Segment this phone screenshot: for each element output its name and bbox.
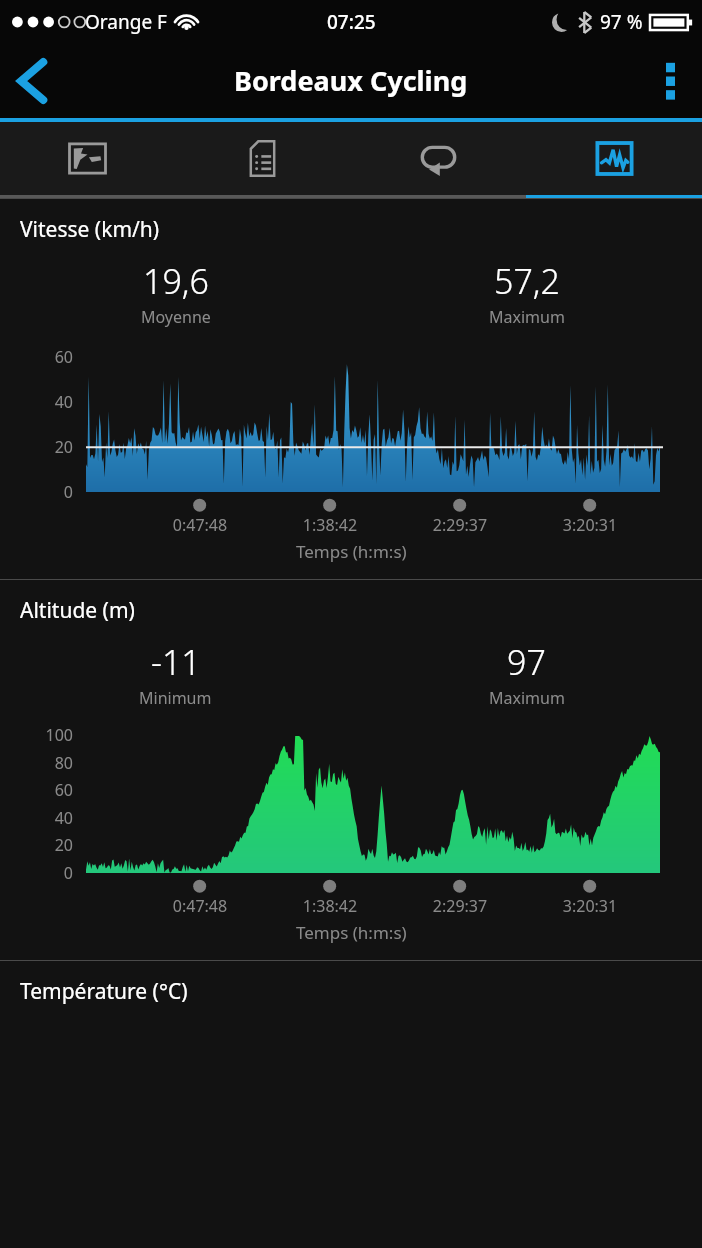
button[interactable]: More options bbox=[638, 49, 702, 113]
staticText: Vitesse (km/h) bbox=[20, 215, 160, 244]
staticText: 20 bbox=[0, 436, 73, 458]
staticText: 2:29:37 bbox=[109, 895, 702, 917]
staticText: Maximum bbox=[489, 306, 565, 328]
staticText: Altitude (m) bbox=[20, 596, 135, 625]
staticText: 2:29:37 bbox=[109, 514, 702, 536]
staticText: Temps (h:m:s) bbox=[296, 540, 407, 563]
staticText: 97 % bbox=[600, 9, 643, 35]
staticText: 19,6 bbox=[143, 258, 209, 304]
staticText: Moyenne bbox=[141, 306, 211, 328]
staticText: 20 bbox=[0, 834, 73, 856]
staticText: 1:38:42 bbox=[0, 895, 681, 917]
staticText: 60 bbox=[0, 346, 73, 368]
staticText: 07:25 bbox=[327, 9, 376, 35]
button[interactable]: Details bbox=[175, 122, 350, 195]
staticText: 97 bbox=[507, 639, 546, 685]
staticText: Bordeaux Cycling bbox=[234, 62, 468, 99]
staticText: 0:47:48 bbox=[0, 514, 551, 536]
staticText: 1:38:42 bbox=[0, 514, 681, 536]
staticText: Température (°C) bbox=[20, 977, 188, 1006]
staticText: 40 bbox=[0, 807, 73, 829]
staticText: 0:47:48 bbox=[0, 895, 551, 917]
staticText: 3:20:31 bbox=[239, 514, 702, 536]
staticText: Orange F bbox=[85, 9, 167, 35]
staticText: 3:20:31 bbox=[239, 895, 702, 917]
staticText: 57,2 bbox=[494, 258, 560, 304]
staticText: 80 bbox=[0, 752, 73, 774]
staticText: Minimum bbox=[139, 687, 212, 709]
staticText: 0 bbox=[0, 481, 73, 503]
staticText: Maximum bbox=[489, 687, 565, 709]
staticText: Temps (h:m:s) bbox=[296, 921, 407, 944]
staticText: 40 bbox=[0, 391, 73, 413]
button[interactable]: Laps bbox=[350, 122, 526, 195]
button[interactable]: Back bbox=[0, 49, 64, 113]
button[interactable]: Charts bbox=[526, 122, 702, 195]
staticText: 60 bbox=[0, 779, 73, 801]
staticText: 0 bbox=[0, 862, 73, 884]
staticText: 100 bbox=[0, 724, 73, 746]
button[interactable]: Map bbox=[0, 122, 175, 195]
staticText: -11 bbox=[151, 639, 201, 685]
